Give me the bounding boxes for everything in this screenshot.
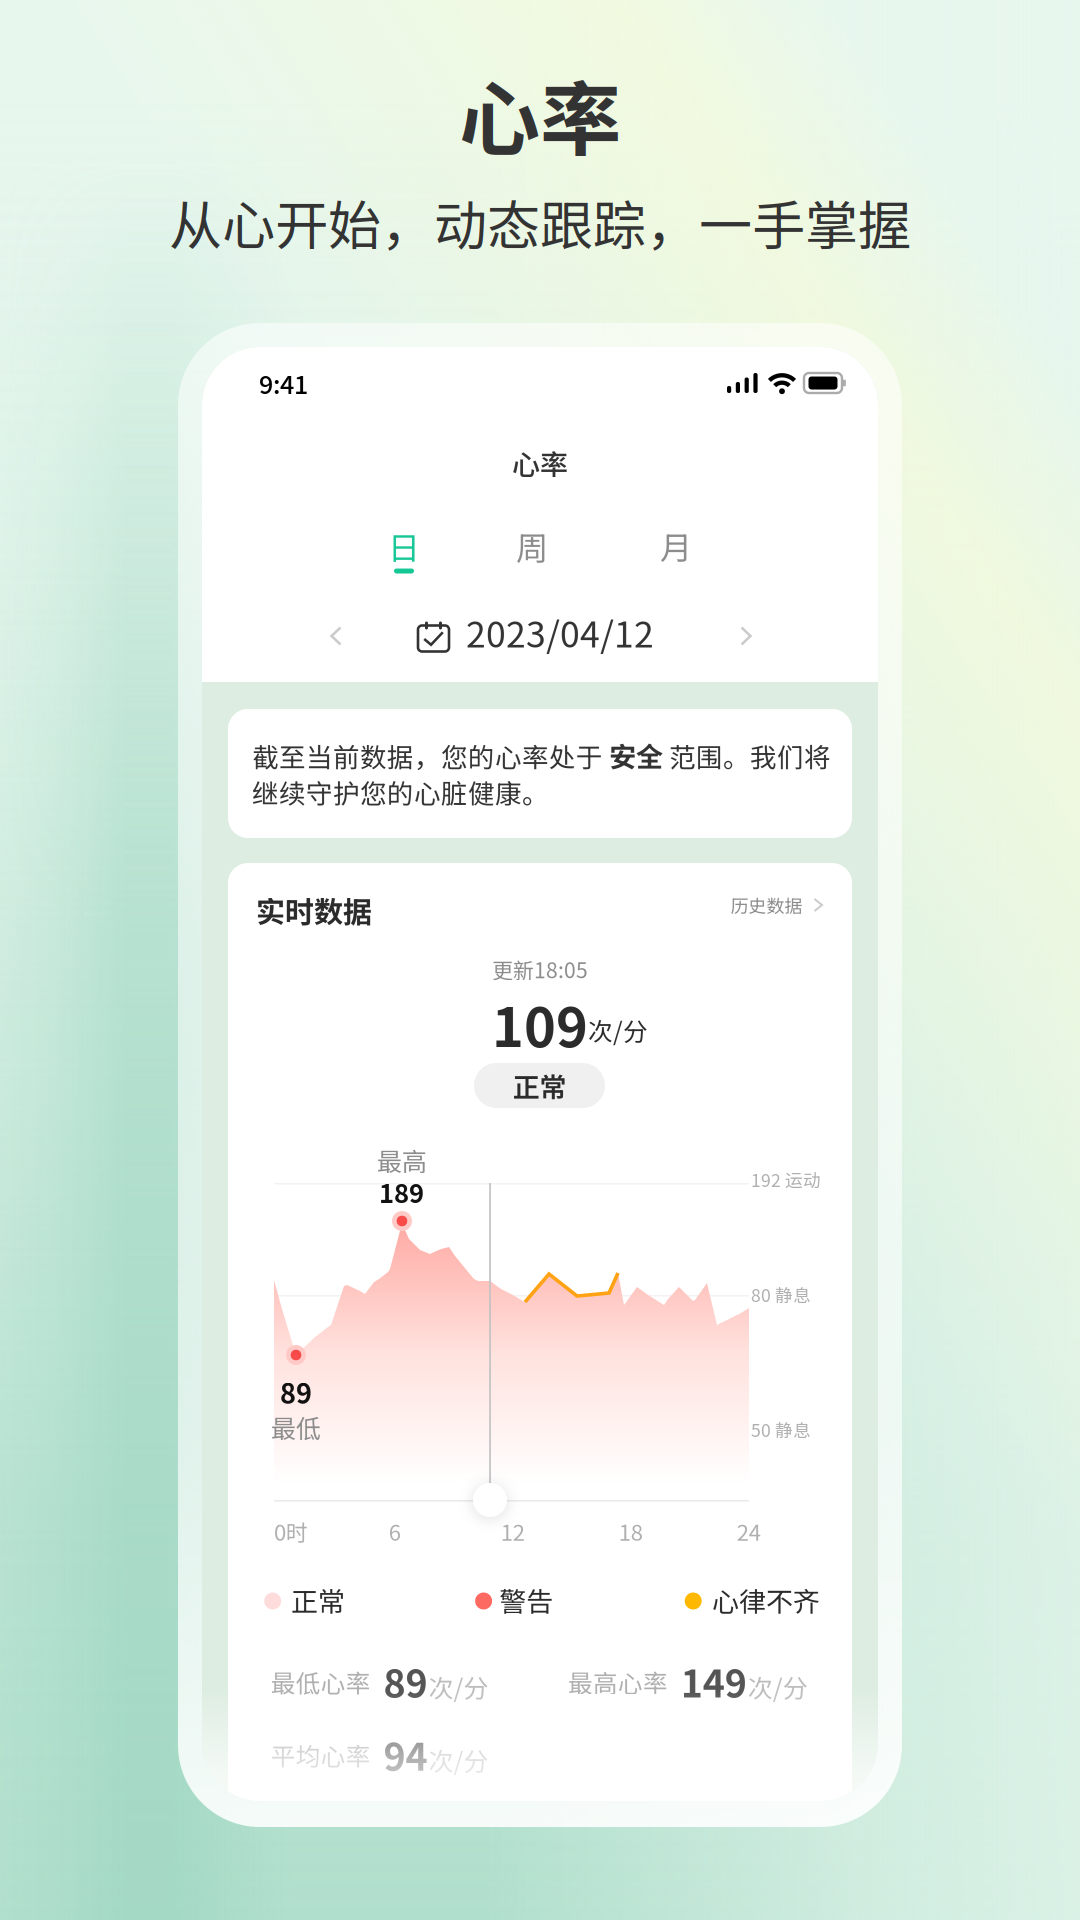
staticText: 189	[379, 1173, 424, 1210]
button[interactable]: 2023/04/12	[412, 606, 662, 678]
staticText: 192 运动	[751, 1167, 821, 1192]
staticText: 最低心率	[271, 1664, 371, 1699]
staticText: 月	[660, 522, 692, 569]
button[interactable]: Previous day	[305, 605, 367, 667]
staticText: 94	[383, 1727, 427, 1782]
staticText: 日	[388, 522, 420, 569]
staticText: 正常	[291, 1580, 345, 1620]
staticText: 0时	[274, 1515, 308, 1547]
staticText: 最高	[377, 1142, 427, 1178]
staticText: 89	[383, 1654, 427, 1708]
button[interactable]: 历史数据	[202, 347, 344, 385]
staticText: 12	[501, 1515, 525, 1547]
staticText: 50 静息	[751, 1417, 811, 1442]
staticText: 次/分	[428, 1742, 488, 1778]
staticText: 更新18:05	[492, 954, 588, 984]
staticText: 正常	[512, 1066, 566, 1105]
staticText: 继续守护您的心脏健康。	[252, 773, 549, 811]
staticText: 80 静息	[751, 1282, 811, 1307]
staticText: 心律不齐	[712, 1580, 820, 1620]
staticText: 警告	[499, 1580, 553, 1620]
staticText: 18	[619, 1515, 643, 1547]
staticText: 最低	[271, 1409, 321, 1445]
staticText: 次/分	[748, 1669, 808, 1705]
staticText: 心率	[512, 443, 568, 483]
staticText: 心率	[459, 55, 621, 172]
staticText: 周	[516, 522, 548, 569]
staticText: 6	[389, 1515, 401, 1547]
staticText: 平均心率	[271, 1737, 371, 1773]
staticText: 次/分	[428, 1669, 488, 1705]
staticText: 实时数据	[256, 889, 372, 931]
staticText: 109	[492, 984, 588, 1062]
staticText: 89	[280, 1372, 312, 1411]
staticText: 9:41	[259, 365, 308, 401]
staticText: 149	[681, 1654, 747, 1708]
staticText: 次/分	[588, 1012, 648, 1048]
button[interactable]: Next day	[715, 605, 777, 667]
button[interactable]: 日	[366, 509, 442, 585]
staticText: 2023/04/12	[466, 606, 654, 658]
staticText: 从心开始，动态跟踪，一手掌握	[169, 183, 911, 260]
staticText: 24	[737, 1515, 761, 1547]
button[interactable]: 周	[494, 509, 570, 585]
staticText: 历史数据	[730, 892, 802, 918]
button[interactable]: 月	[638, 509, 714, 585]
staticText: 截至当前数据，您的心率处于 安全 范围。我们将	[252, 736, 831, 774]
staticText: 最高心率	[568, 1664, 668, 1699]
